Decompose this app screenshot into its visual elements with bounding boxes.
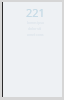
staticText: amet cons: [27, 32, 44, 37]
staticText: 221: [26, 5, 45, 20]
staticText: dolor sit: [28, 26, 42, 31]
staticText: lorem ipsu: [27, 20, 44, 25]
